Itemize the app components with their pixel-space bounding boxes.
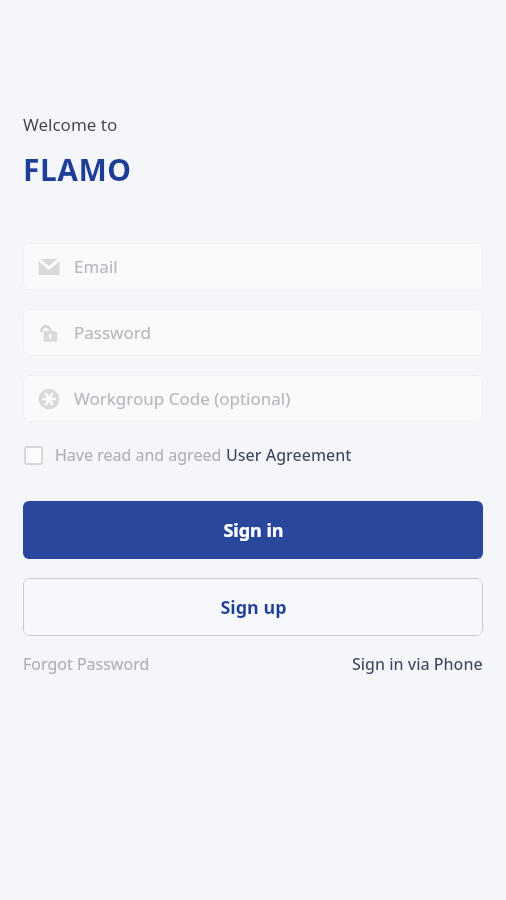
button[interactable]: Sign up xyxy=(23,578,483,636)
button[interactable]: Password xyxy=(23,309,483,356)
staticText: Welcome to xyxy=(23,113,118,136)
staticText: Sign in via Phone xyxy=(352,653,483,675)
staticText: Have read and agreed xyxy=(55,444,226,466)
staticText: Password xyxy=(74,321,151,344)
button[interactable]: Workgroup Code (optional) xyxy=(23,375,483,422)
staticText: FLAMO xyxy=(23,149,132,190)
staticText: Workgroup Code (optional) xyxy=(74,387,291,410)
staticText: Forgot Password xyxy=(23,653,150,675)
button[interactable]: Sign in xyxy=(23,501,483,559)
staticText: User Agreement xyxy=(226,444,352,466)
staticText: Sign in xyxy=(223,518,284,543)
staticText: Sign up xyxy=(220,595,287,620)
button[interactable]: Have read and agreed xyxy=(23,444,483,466)
button[interactable]: Sign in via Phone xyxy=(352,653,483,675)
staticText: Email xyxy=(74,255,118,278)
button[interactable]: Email xyxy=(23,243,483,290)
button[interactable]: Forgot Password xyxy=(23,653,150,675)
